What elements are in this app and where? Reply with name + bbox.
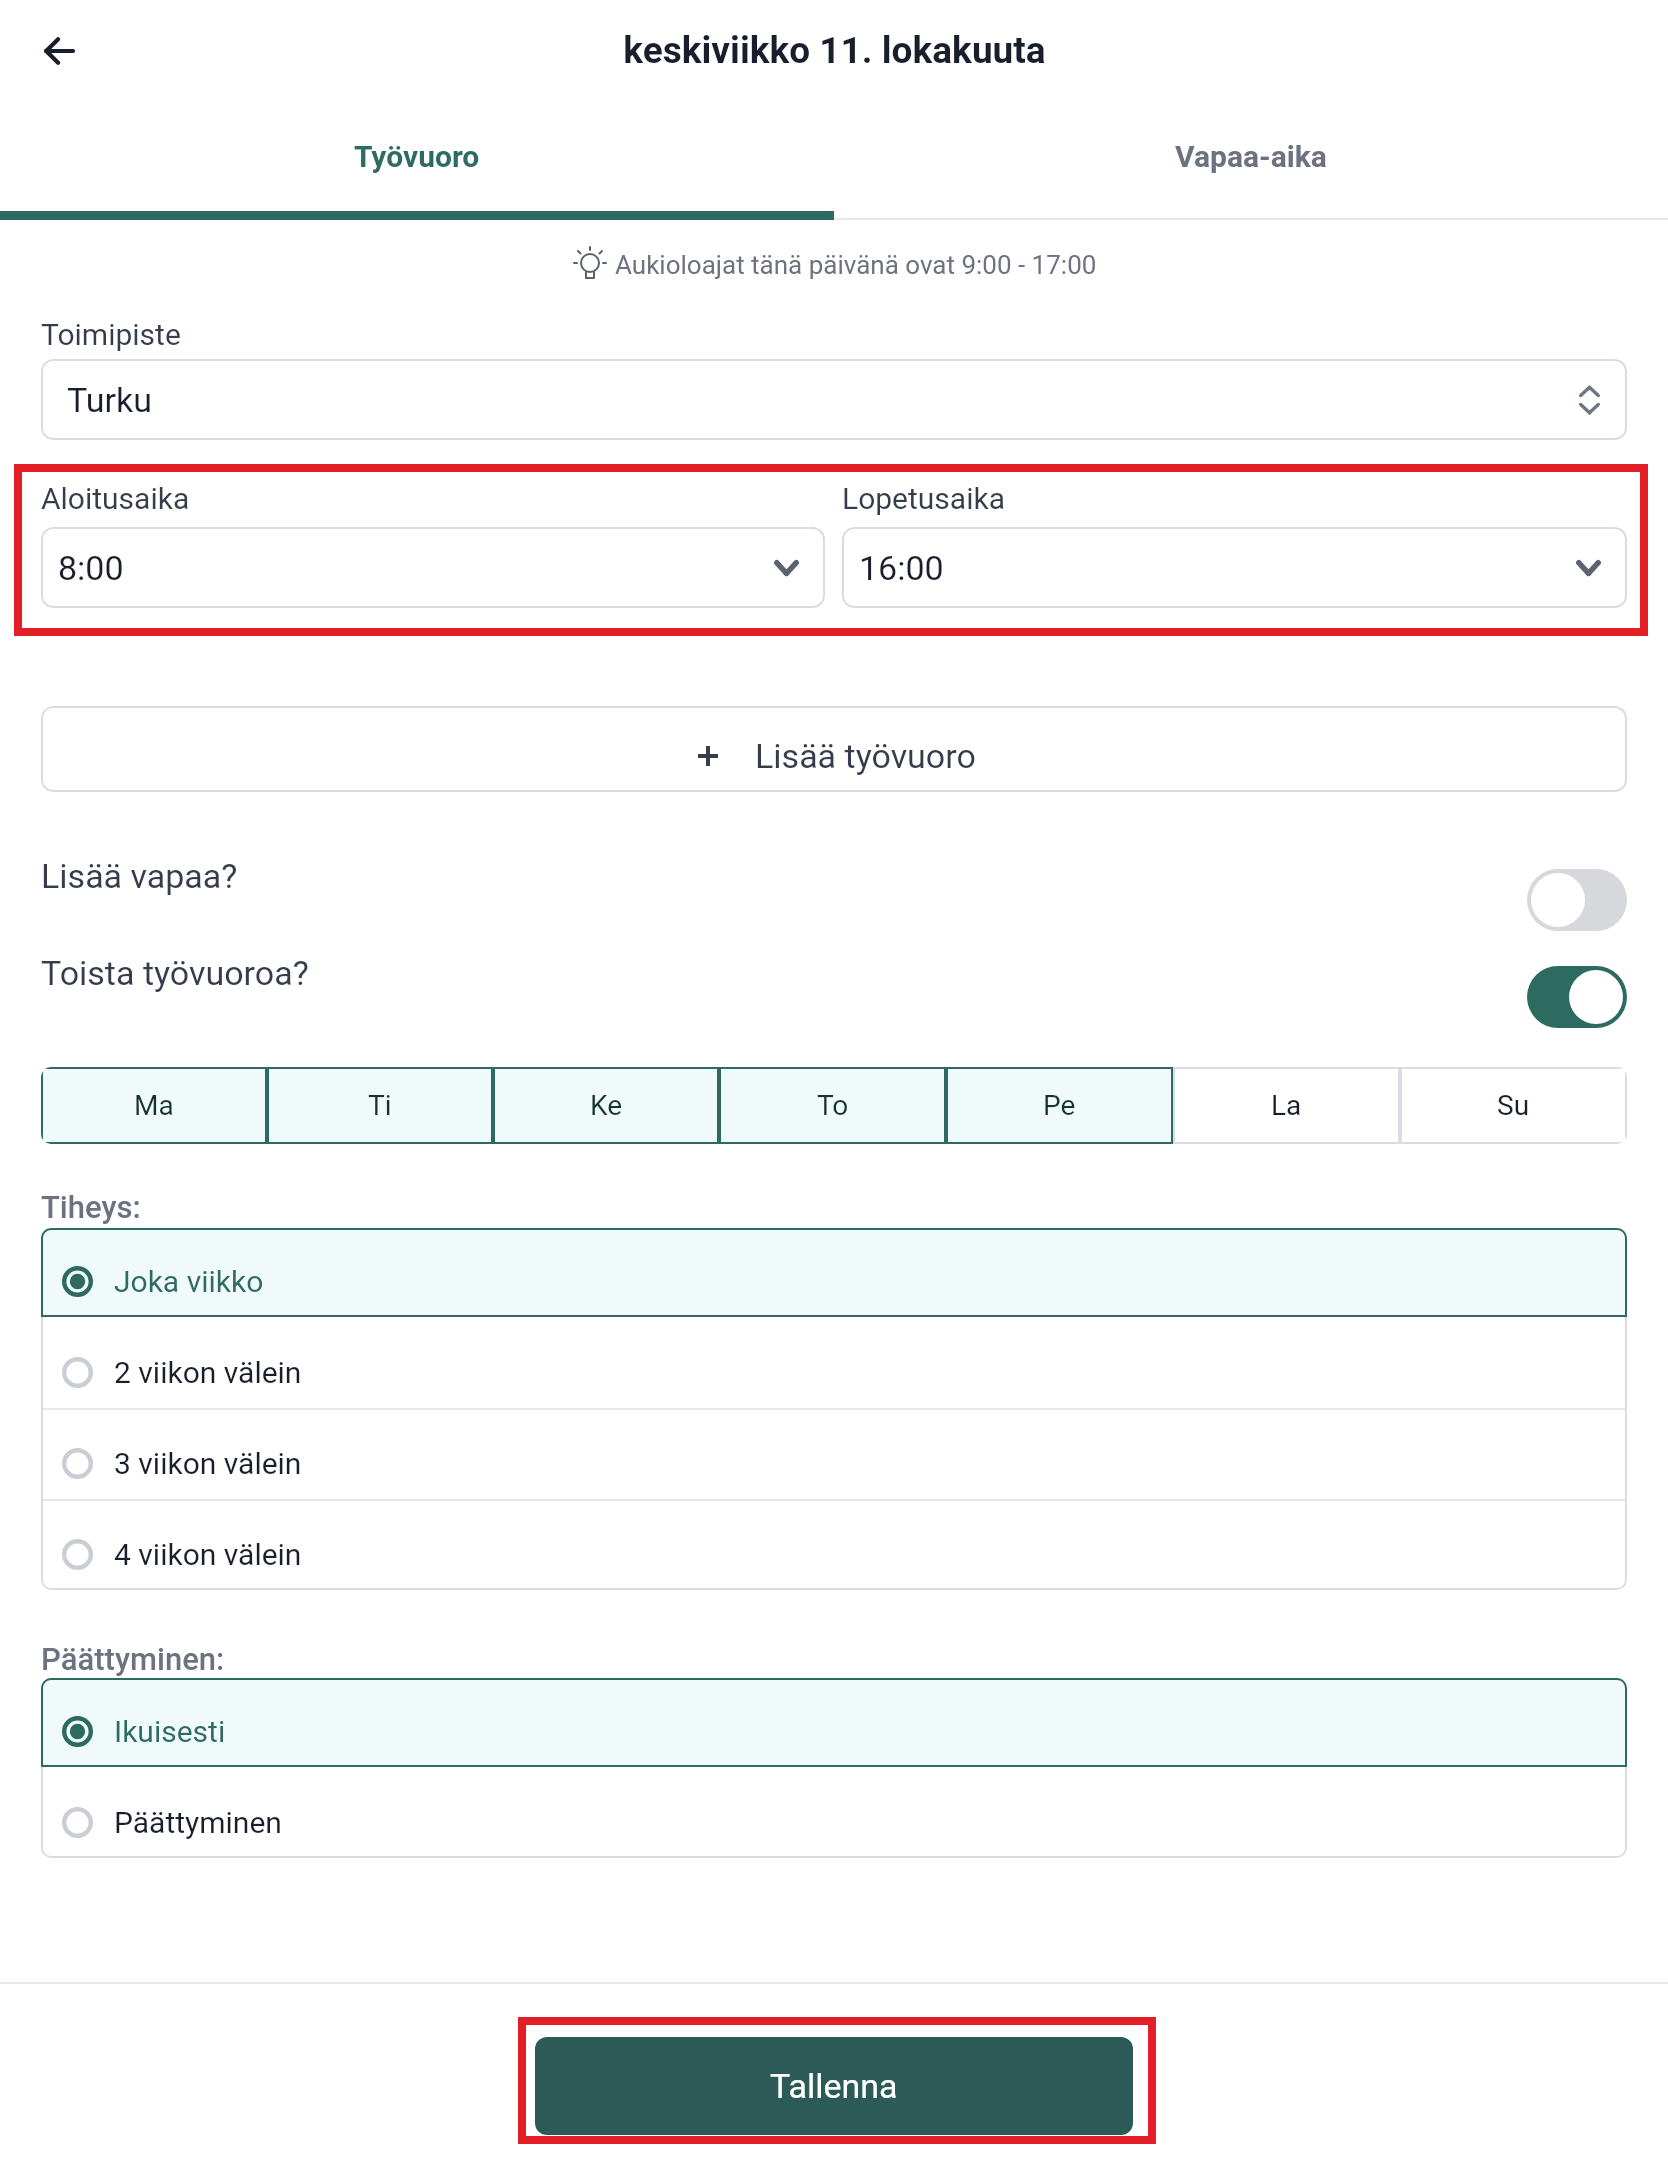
- button[interactable]: Päättyminen: [41, 1769, 1627, 1858]
- staticText: 3 viikon välein: [114, 1446, 302, 1481]
- staticText: Lisää vapaa?: [41, 856, 238, 896]
- button[interactable]: Ti: [267, 1067, 493, 1144]
- button[interactable]: Back: [14, 6, 104, 96]
- staticText: Tiheys:: [41, 1189, 141, 1225]
- staticText: Ke: [590, 1089, 623, 1122]
- staticText: 16:00: [859, 548, 944, 588]
- button[interactable]: Su: [1400, 1067, 1627, 1144]
- staticText: To: [817, 1089, 849, 1122]
- staticText: 2 viikon välein: [114, 1355, 302, 1390]
- button[interactable]: Toista työvuoroa?: [41, 953, 1627, 1029]
- button[interactable]: To: [719, 1067, 946, 1144]
- button[interactable]: Tallenna: [535, 2037, 1133, 2135]
- button[interactable]: 2 viikon välein: [41, 1319, 1627, 1408]
- staticText: Toista työvuoroa?: [41, 953, 309, 993]
- staticText: Päättyminen: [114, 1805, 282, 1840]
- button[interactable]: Ke: [493, 1067, 719, 1144]
- button[interactable]: Lisää työvuoro: [41, 706, 1627, 792]
- staticText: 4 viikon välein: [114, 1537, 302, 1572]
- button[interactable]: Työvuoro: [0, 93, 834, 220]
- staticText: Aukioloajat tänä päivänä ovat 9:00 - 17:…: [615, 250, 1097, 280]
- button[interactable]: 4 viikon välein: [41, 1501, 1627, 1590]
- staticText: Turku: [67, 380, 152, 420]
- staticText: Työvuoro: [354, 139, 480, 174]
- staticText: Vapaa-aika: [1175, 139, 1327, 174]
- staticText: 8:00: [58, 548, 124, 588]
- staticText: Päättyminen:: [41, 1641, 225, 1677]
- button[interactable]: Lisää vapaa?: [41, 856, 1627, 932]
- staticText: Ma: [134, 1089, 174, 1122]
- staticText: Tallenna: [770, 2066, 898, 2106]
- staticText: Lopetusaika: [842, 481, 1005, 516]
- staticText: keskiviikko 11. lokakuuta: [623, 29, 1046, 72]
- staticText: Aloitusaika: [41, 481, 190, 516]
- staticText: Ti: [368, 1089, 392, 1122]
- staticText: Toimipiste: [41, 317, 181, 352]
- button[interactable]: Ikuisesti: [41, 1678, 1627, 1767]
- button[interactable]: Pe: [946, 1067, 1173, 1144]
- button[interactable]: Joka viikko: [41, 1228, 1627, 1317]
- staticText: Su: [1497, 1089, 1530, 1122]
- button[interactable]: Turku: [41, 359, 1627, 440]
- staticText: Joka viikko: [114, 1264, 264, 1299]
- button[interactable]: 3 viikon välein: [41, 1410, 1627, 1499]
- button[interactable]: Vapaa-aika: [834, 93, 1668, 220]
- button[interactable]: 8:00: [41, 527, 825, 608]
- staticText: La: [1271, 1089, 1302, 1122]
- staticText: Lisää työvuoro: [755, 736, 976, 776]
- staticText: Ikuisesti: [114, 1714, 226, 1749]
- button[interactable]: Ma: [41, 1067, 267, 1144]
- button[interactable]: 16:00: [842, 527, 1627, 608]
- button[interactable]: La: [1173, 1067, 1400, 1144]
- staticText: Pe: [1043, 1089, 1076, 1122]
